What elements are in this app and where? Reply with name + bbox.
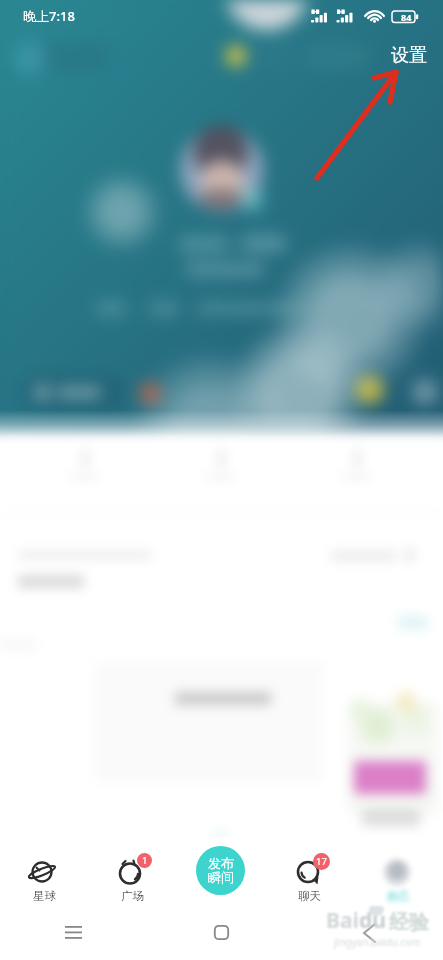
button[interactable]: Home [147,905,295,960]
staticText: jingyan.baidu.com [334,935,421,949]
button[interactable]: Recent apps [0,905,147,960]
staticText: 发布 瞬间 [208,855,234,886]
staticText: 1 [142,854,148,867]
staticText: 广场 [121,889,144,903]
button[interactable]: 设置 [387,42,431,69]
staticText: 星球 [33,889,56,903]
staticText: 聊天 [298,889,321,903]
button[interactable]: 星球 [0,838,88,906]
staticText: 经验 [389,910,429,935]
staticText: 晚上7:18 [23,7,75,25]
button[interactable]: 发布 瞬间 [196,846,245,895]
button[interactable]: 17 [265,838,354,906]
staticText: 17 [316,855,327,868]
staticText: du [359,906,386,935]
button[interactable]: Back [295,905,443,960]
staticText: 自己 [387,889,410,903]
staticText: 84 [401,11,412,22]
staticText: 设置 [391,44,427,67]
button[interactable]: 自己 [354,838,443,906]
button[interactable]: 1 [88,838,176,906]
staticText: Bai [326,906,359,935]
